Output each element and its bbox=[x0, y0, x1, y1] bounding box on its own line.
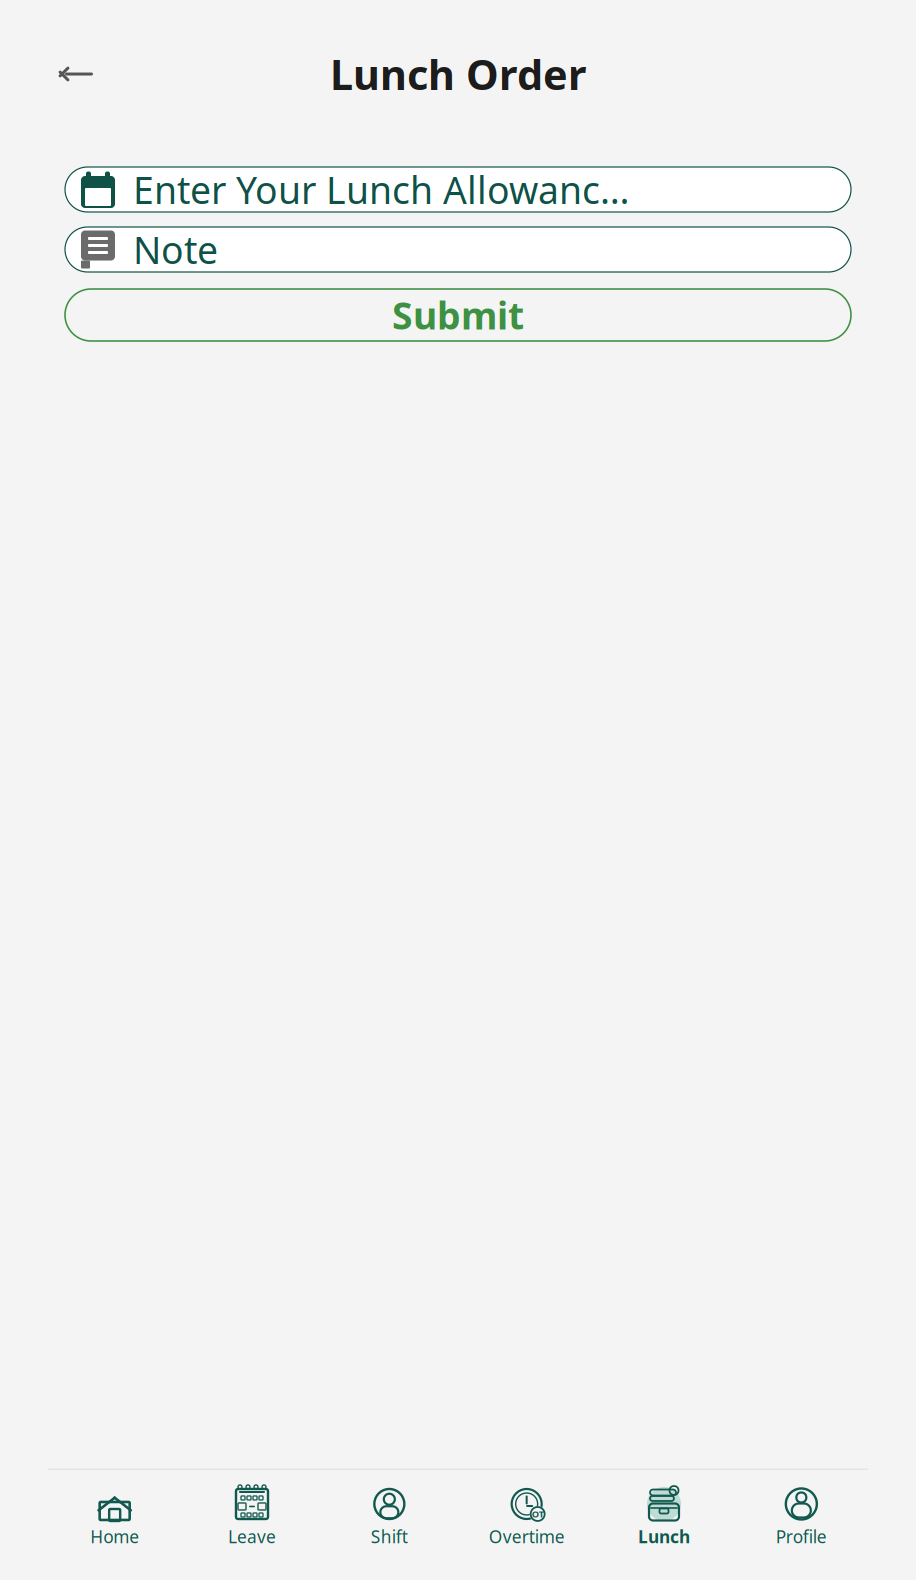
staticText: Lunch Order bbox=[330, 47, 586, 101]
button[interactable]: Shift bbox=[321, 1482, 458, 1552]
button[interactable]: Leave bbox=[183, 1482, 321, 1552]
button[interactable]: Enter Your Lunch Allowanc… bbox=[65, 167, 851, 212]
button[interactable]: Submit bbox=[65, 289, 851, 341]
button[interactable]: Back bbox=[57, 52, 101, 96]
staticText: Lunch bbox=[638, 1525, 690, 1548]
button[interactable]: Lunch bbox=[595, 1482, 733, 1552]
staticText: OT bbox=[532, 1508, 544, 1520]
button[interactable]: Note bbox=[65, 227, 851, 272]
button[interactable]: Profile bbox=[733, 1482, 870, 1552]
button[interactable]: Home bbox=[46, 1482, 183, 1552]
staticText: Submit bbox=[392, 290, 524, 340]
staticText: Enter Your Lunch Allowanc… bbox=[133, 165, 630, 214]
staticText: Overtime bbox=[489, 1525, 565, 1548]
staticText: Leave bbox=[228, 1525, 276, 1548]
button[interactable]: OT bbox=[458, 1482, 595, 1552]
staticText: Note bbox=[133, 225, 218, 274]
staticText: Profile bbox=[776, 1525, 827, 1548]
staticText: Home bbox=[90, 1525, 139, 1548]
staticText: Shift bbox=[371, 1525, 408, 1548]
